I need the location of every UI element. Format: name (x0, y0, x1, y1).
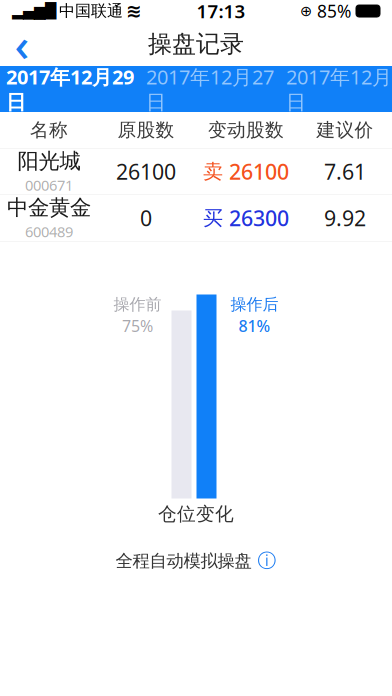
button[interactable]: 2017年12月27日 (140, 66, 280, 112)
staticText: 17:13 (196, 0, 245, 23)
staticText: 000671 (25, 175, 73, 195)
staticText: 9.92 (324, 204, 366, 232)
staticText: 75% (122, 315, 153, 336)
staticText: 阳光城 (17, 148, 80, 174)
staticText: 操作前 (113, 294, 161, 314)
staticText: 600489 (25, 222, 73, 241)
staticText: 26100 (116, 157, 176, 186)
staticText: 变动股数 (208, 118, 284, 141)
staticText: 操盘记录 (148, 29, 244, 59)
staticText: 仓位变化 (158, 502, 234, 525)
staticText: 原股数 (117, 118, 174, 141)
staticText: ⊕ (300, 3, 312, 19)
staticText: ▂▄▆█ (12, 3, 56, 19)
staticText: 建议价 (316, 118, 373, 141)
staticText: 85% (317, 0, 351, 22)
staticText: 2017年12月26日 (286, 63, 392, 114)
staticText: 中金黄金 (7, 195, 91, 221)
staticText: 卖 (203, 159, 223, 184)
staticText: 2017年12月27日 (146, 63, 274, 114)
staticText: 0 (140, 204, 152, 232)
staticText: 81% (238, 315, 270, 336)
staticText: ⓘ (257, 549, 276, 572)
staticText: 买 (203, 206, 223, 230)
staticText: 2017年12月29日 (6, 63, 134, 114)
staticText: 操作后 (230, 294, 278, 314)
staticText: 全程自动模拟操盘 (115, 550, 251, 571)
staticText: 26300 (229, 204, 289, 232)
staticText: 26100 (229, 157, 289, 186)
staticText: 7.61 (324, 157, 366, 186)
button[interactable]: 2017年12月26日 (280, 66, 392, 112)
staticText: 中国联通 (59, 1, 123, 21)
button[interactable]: 全程自动模拟操盘 (105, 543, 286, 578)
staticText: ‹ (14, 14, 29, 74)
staticText: 名称 (30, 118, 68, 141)
button[interactable]: Back (0, 22, 44, 66)
button[interactable]: 2017年12月29日 (0, 66, 140, 112)
staticText: ≋ (126, 0, 142, 22)
